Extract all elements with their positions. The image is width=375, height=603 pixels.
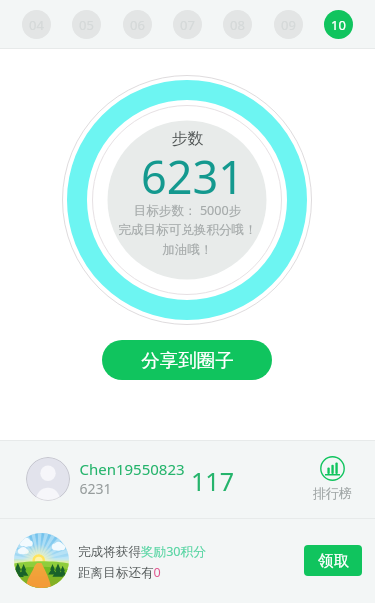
staticText: 06 xyxy=(130,16,145,34)
button[interactable]: 09 xyxy=(274,10,303,39)
button[interactable]: 10 xyxy=(324,10,353,39)
staticText: 10 xyxy=(331,16,346,34)
staticText: 05 xyxy=(79,16,94,34)
staticText: 6231 xyxy=(5,146,375,207)
staticText: 领取 xyxy=(318,551,349,571)
staticText: 目标步数： 5000步 xyxy=(0,202,375,219)
staticText: 117 xyxy=(191,464,234,498)
other: 排行榜 xyxy=(320,456,345,481)
staticText: 6231 xyxy=(79,479,112,498)
staticText: 步数 xyxy=(0,129,375,149)
staticText: Chen19550823 xyxy=(79,459,185,479)
button[interactable]: 04 xyxy=(22,10,51,39)
button[interactable]: 07 xyxy=(173,10,202,39)
button[interactable]: 06 xyxy=(123,10,152,39)
button[interactable]: Chen19550823 xyxy=(0,440,375,518)
staticText: 加油哦！ xyxy=(0,242,375,258)
staticText: 08 xyxy=(230,16,245,34)
button[interactable]: 领取 xyxy=(304,545,362,576)
button[interactable]: 05 xyxy=(72,10,101,39)
staticText: 分享到圈子 xyxy=(141,349,234,372)
staticText: 07 xyxy=(180,16,195,34)
staticText: 排行榜 xyxy=(313,485,352,501)
button[interactable]: 分享到圈子 xyxy=(102,340,272,380)
button[interactable]: 08 xyxy=(223,10,252,39)
staticText: 完成将获得奖励30积分 xyxy=(78,543,206,560)
staticText: 09 xyxy=(281,16,296,34)
button[interactable]: 排行榜 xyxy=(308,456,357,501)
staticText: 完成目标可兑换积分哦！ xyxy=(0,222,375,238)
staticText: 距离目标还有0 xyxy=(78,564,161,581)
staticText: 04 xyxy=(29,16,44,34)
